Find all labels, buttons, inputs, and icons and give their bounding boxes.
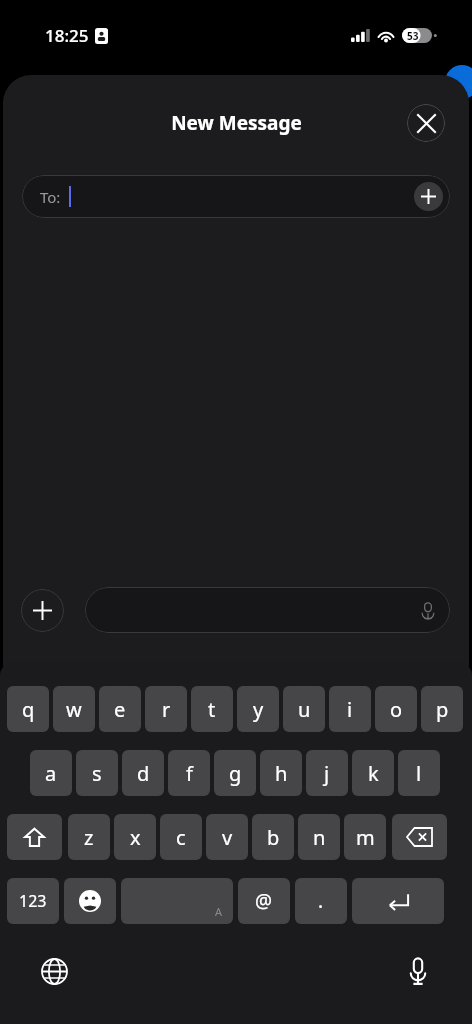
- staticText: v: [222, 824, 233, 851]
- staticText: y: [253, 696, 264, 723]
- button[interactable]: Space: [121, 878, 233, 924]
- staticText: o: [390, 696, 403, 723]
- staticText: g: [229, 760, 242, 787]
- staticText: New Message: [171, 110, 302, 136]
- button[interactable]: Voice input: [396, 949, 440, 993]
- staticText: d: [137, 760, 150, 787]
- staticText: l: [416, 760, 422, 787]
- staticText: b: [267, 824, 280, 851]
- button[interactable]: @: [238, 878, 290, 924]
- staticText: .: [318, 888, 324, 914]
- staticText: z: [84, 824, 94, 851]
- staticText: n: [313, 824, 326, 851]
- button[interactable]: Add attachment: [21, 589, 64, 632]
- button[interactable]: a: [30, 750, 72, 796]
- staticText: A: [215, 904, 223, 919]
- staticText: 53: [407, 29, 419, 43]
- staticText: u: [298, 696, 311, 723]
- staticText: To:: [40, 187, 61, 207]
- staticText: r: [162, 696, 171, 723]
- button[interactable]: Add contact: [414, 182, 443, 211]
- staticText: w: [66, 696, 82, 723]
- button[interactable]: h: [260, 750, 302, 796]
- button[interactable]: y: [237, 686, 279, 732]
- button[interactable]: n: [298, 814, 340, 860]
- staticText: 18:25: [45, 24, 89, 47]
- staticText: h: [275, 760, 288, 787]
- button[interactable]: b: [252, 814, 294, 860]
- button[interactable]: Backspace: [392, 814, 447, 860]
- button[interactable]: r: [145, 686, 187, 732]
- button[interactable]: l: [398, 750, 440, 796]
- button[interactable]: s: [76, 750, 118, 796]
- staticText: x: [130, 824, 141, 851]
- button[interactable]: x: [114, 814, 156, 860]
- button[interactable]: g: [214, 750, 256, 796]
- button[interactable]: z: [68, 814, 110, 860]
- staticText: k: [368, 760, 379, 787]
- button[interactable]: c: [160, 814, 202, 860]
- button[interactable]: To:: [22, 175, 450, 218]
- button[interactable]: [85, 587, 450, 633]
- staticText: e: [114, 696, 126, 723]
- button[interactable]: o: [375, 686, 417, 732]
- button[interactable]: Change keyboard language: [32, 949, 76, 993]
- staticText: a: [45, 760, 57, 787]
- button[interactable]: i: [329, 686, 371, 732]
- staticText: q: [22, 696, 35, 723]
- button[interactable]: 123: [7, 878, 59, 924]
- button[interactable]: t: [191, 686, 233, 732]
- staticText: p: [436, 696, 449, 723]
- staticText: 123: [19, 890, 47, 912]
- staticText: @: [255, 888, 273, 914]
- staticText: i: [347, 696, 353, 723]
- button[interactable]: Shift: [7, 814, 62, 860]
- staticText: m: [356, 824, 375, 851]
- button[interactable]: d: [122, 750, 164, 796]
- button[interactable]: w: [53, 686, 95, 732]
- staticText: j: [324, 760, 330, 787]
- button[interactable]: m: [344, 814, 386, 860]
- staticText: s: [92, 760, 102, 787]
- button[interactable]: Close: [407, 104, 445, 142]
- button[interactable]: e: [99, 686, 141, 732]
- staticText: c: [176, 824, 186, 851]
- button[interactable]: p: [421, 686, 463, 732]
- button[interactable]: Enter: [352, 878, 444, 924]
- button[interactable]: .: [295, 878, 347, 924]
- staticText: f: [186, 760, 193, 787]
- button[interactable]: q: [7, 686, 49, 732]
- button[interactable]: Emoji: [64, 878, 116, 924]
- button[interactable]: v: [206, 814, 248, 860]
- button[interactable]: u: [283, 686, 325, 732]
- staticText: t: [208, 696, 216, 723]
- button[interactable]: k: [352, 750, 394, 796]
- button[interactable]: f: [168, 750, 210, 796]
- button[interactable]: j: [306, 750, 348, 796]
